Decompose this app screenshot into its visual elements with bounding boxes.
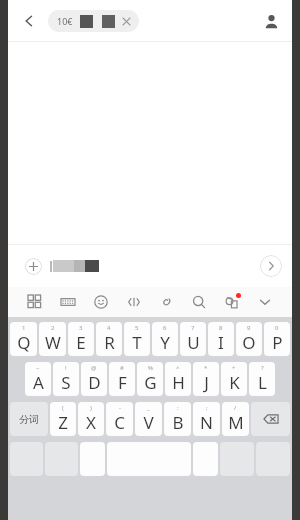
- button[interactable]: 6: [152, 322, 178, 356]
- button[interactable]: _: [135, 402, 162, 436]
- staticText: ^: [176, 364, 180, 372]
- staticText: W: [45, 331, 61, 354]
- button[interactable]: ~: [25, 362, 51, 396]
- staticText: 4: [107, 324, 111, 332]
- staticText: R: [104, 331, 115, 354]
- staticText: ?: [261, 364, 264, 372]
- staticText: X: [86, 411, 96, 434]
- button[interactable]: Camera: [219, 289, 245, 315]
- staticText: O: [242, 331, 256, 354]
- button[interactable]: !: [53, 362, 79, 396]
- button[interactable]: 9: [236, 322, 262, 356]
- button[interactable]: Keyboard: [55, 289, 81, 315]
- button[interactable]: Emoji: [88, 289, 114, 315]
- button[interactable]: -: [106, 402, 133, 436]
- button[interactable]: Apps: [22, 289, 48, 315]
- button[interactable]: 7: [180, 322, 206, 356]
- staticText: G: [144, 371, 157, 394]
- button[interactable]: 8: [208, 322, 234, 356]
- button[interactable]: [193, 442, 218, 476]
- staticText: 10€: [57, 15, 73, 27]
- staticText: Z: [58, 411, 68, 434]
- button[interactable]: 10€: [48, 10, 139, 32]
- staticText: Y: [160, 331, 170, 354]
- staticText: /: [234, 404, 237, 412]
- staticText: E: [76, 331, 86, 354]
- button[interactable]: /: [222, 402, 249, 436]
- button[interactable]: Back: [14, 6, 44, 36]
- button[interactable]: [80, 442, 105, 476]
- button[interactable]: #: [109, 362, 135, 396]
- staticText: ;: [206, 404, 208, 412]
- staticText: A: [33, 371, 44, 394]
- staticText: %: [148, 364, 153, 372]
- staticText: J: [204, 371, 209, 394]
- staticText: L: [258, 371, 267, 394]
- button[interactable]: 5: [124, 322, 150, 356]
- staticText: #: [120, 364, 124, 372]
- staticText: 分词: [19, 413, 39, 426]
- button[interactable]: ): [78, 402, 104, 436]
- staticText: T: [132, 331, 142, 354]
- staticText: I: [218, 331, 224, 354]
- staticText: 7: [191, 324, 195, 332]
- staticText: K: [229, 371, 240, 394]
- button[interactable]: Collapse keyboard: [252, 289, 278, 315]
- staticText: N: [200, 411, 213, 434]
- staticText: 6: [163, 324, 167, 332]
- button[interactable]: ?: [249, 362, 275, 396]
- staticText: Q: [17, 331, 31, 354]
- button[interactable]: (: [50, 402, 76, 436]
- staticText: !: [65, 364, 67, 372]
- staticText: +: [232, 364, 236, 372]
- staticText: 1: [22, 324, 26, 332]
- button[interactable]: Attach: [153, 289, 179, 315]
- staticText: ): [90, 404, 92, 412]
- button[interactable]: Backspace: [251, 402, 290, 436]
- staticText: :: [177, 404, 179, 412]
- staticText: 9: [247, 324, 251, 332]
- button[interactable]: %: [137, 362, 163, 396]
- staticText: B: [172, 411, 184, 434]
- staticText: S: [61, 371, 71, 394]
- staticText: 2: [51, 324, 55, 332]
- button[interactable]: 1: [10, 322, 37, 356]
- button[interactable]: :: [164, 402, 191, 436]
- button[interactable]: ;: [193, 402, 220, 436]
- button[interactable]: 0: [264, 322, 290, 356]
- staticText: M: [228, 411, 244, 434]
- button[interactable]: ^: [165, 362, 191, 396]
- button[interactable]: 4: [96, 322, 122, 356]
- button[interactable]: 分词: [10, 402, 48, 436]
- button[interactable]: *: [193, 362, 219, 396]
- button[interactable]: Profile: [256, 6, 286, 36]
- button[interactable]: Send: [260, 255, 282, 277]
- staticText: V: [143, 411, 154, 434]
- staticText: C: [114, 411, 125, 434]
- button[interactable]: 3: [68, 322, 94, 356]
- staticText: @: [91, 364, 97, 372]
- staticText: 8: [219, 324, 223, 332]
- staticText: 5: [135, 324, 139, 332]
- staticText: F: [118, 371, 127, 394]
- staticText: *: [204, 364, 208, 372]
- button[interactable]: 2: [39, 322, 66, 356]
- button[interactable]: Search: [186, 289, 212, 315]
- button[interactable]: +: [221, 362, 247, 396]
- button[interactable]: Format: [121, 289, 147, 315]
- button[interactable]: @: [81, 362, 107, 396]
- staticText: -: [119, 404, 121, 412]
- staticText: (: [62, 404, 64, 412]
- staticText: D: [88, 371, 101, 394]
- staticText: U: [187, 331, 200, 354]
- button[interactable]: [18, 252, 252, 280]
- staticText: 3: [79, 324, 83, 332]
- staticText: _: [147, 404, 150, 412]
- staticText: H: [172, 371, 185, 394]
- staticText: P: [272, 331, 283, 354]
